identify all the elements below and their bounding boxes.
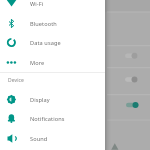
button[interactable]: Display [0,90,105,109]
button[interactable]: Notifications [0,109,105,128]
button[interactable]: More [0,53,105,72]
staticText: Device [8,77,25,84]
staticText: More [30,59,45,67]
staticText: Wi-Fi [30,0,44,8]
staticText: Notifications [30,115,65,123]
button[interactable]: Data usage [0,33,105,52]
button[interactable]: Sound [0,129,105,148]
staticText: Data usage [30,39,61,47]
button[interactable]: Wi-Fi [0,0,105,13]
staticText: Display [30,96,50,104]
staticText: Bluetooth [30,20,57,28]
button[interactable]: Bluetooth [0,14,105,33]
staticText: Sound [30,135,48,143]
